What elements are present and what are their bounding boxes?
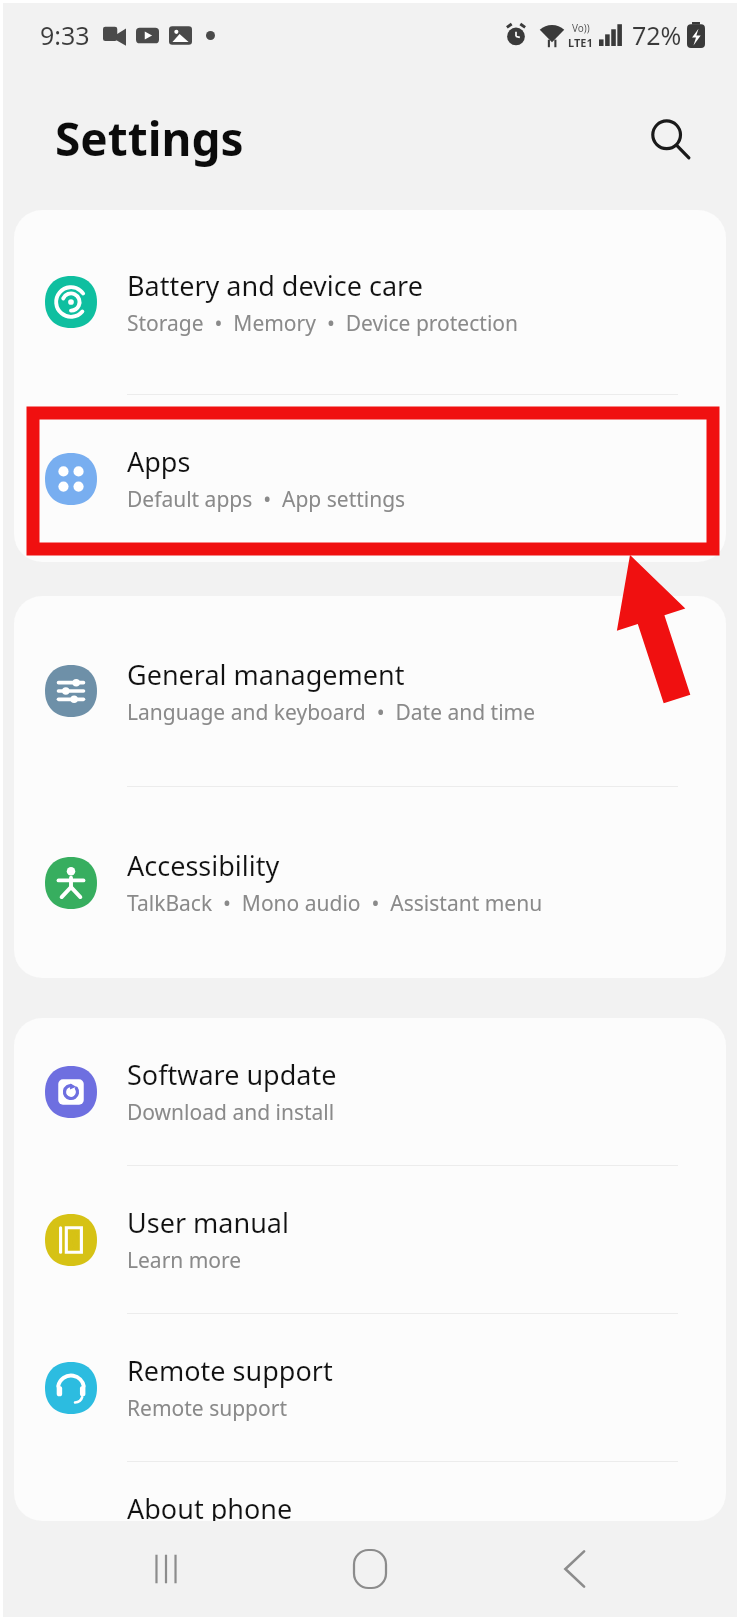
button[interactable]: User manual bbox=[14, 1166, 726, 1313]
button[interactable]: Apps bbox=[14, 395, 726, 562]
staticText: User manual bbox=[127, 1204, 289, 1241]
staticText: Accessibility bbox=[127, 847, 280, 884]
staticText: Vo)) bbox=[572, 21, 590, 35]
staticText: Remote support bbox=[127, 1394, 287, 1423]
staticText: General management bbox=[127, 656, 405, 693]
staticText: Settings bbox=[55, 107, 244, 170]
staticText: Apps bbox=[127, 443, 191, 480]
staticText: LTE1 bbox=[568, 35, 593, 50]
button[interactable]: Back bbox=[533, 1527, 617, 1611]
staticText: Default apps • App settings bbox=[127, 485, 406, 514]
button[interactable]: General management bbox=[14, 596, 726, 786]
button[interactable]: Search bbox=[639, 108, 701, 170]
button[interactable]: Battery and device care bbox=[14, 210, 726, 394]
staticText: Download and install bbox=[127, 1098, 335, 1127]
staticText: Learn more bbox=[127, 1246, 242, 1275]
button[interactable]: Accessibility bbox=[14, 787, 726, 978]
button[interactable]: Software update bbox=[14, 1018, 726, 1165]
staticText: About phone bbox=[127, 1490, 293, 1521]
staticText: Storage • Memory • Device protection bbox=[127, 309, 518, 338]
staticText: Remote support bbox=[127, 1352, 333, 1389]
staticText: 72% bbox=[632, 18, 682, 52]
staticText: 9:33 bbox=[40, 18, 90, 52]
staticText: TalkBack • Mono audio • Assistant menu bbox=[127, 889, 543, 918]
staticText: Language and keyboard • Date and time bbox=[127, 698, 536, 727]
button[interactable]: About phone bbox=[14, 1462, 726, 1521]
button[interactable]: Home bbox=[328, 1527, 412, 1611]
staticText: Battery and device care bbox=[127, 267, 423, 304]
staticText: Software update bbox=[127, 1056, 337, 1093]
button[interactable]: Recent apps bbox=[124, 1527, 208, 1611]
button[interactable]: Remote support bbox=[14, 1314, 726, 1461]
